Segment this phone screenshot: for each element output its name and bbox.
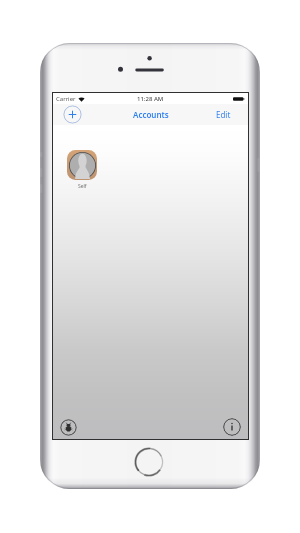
staticText: Self bbox=[78, 183, 87, 190]
button[interactable]: Debug bbox=[60, 419, 77, 436]
button[interactable]: Add account bbox=[63, 105, 82, 124]
staticText: Edit bbox=[216, 109, 231, 120]
staticText: 11:28 AM bbox=[137, 95, 164, 103]
button[interactable]: Info bbox=[223, 418, 241, 436]
staticText: Carrier bbox=[56, 95, 76, 103]
button[interactable]: Self bbox=[67, 150, 97, 190]
button[interactable]: Edit bbox=[210, 105, 248, 124]
staticText: Accounts bbox=[133, 109, 169, 120]
